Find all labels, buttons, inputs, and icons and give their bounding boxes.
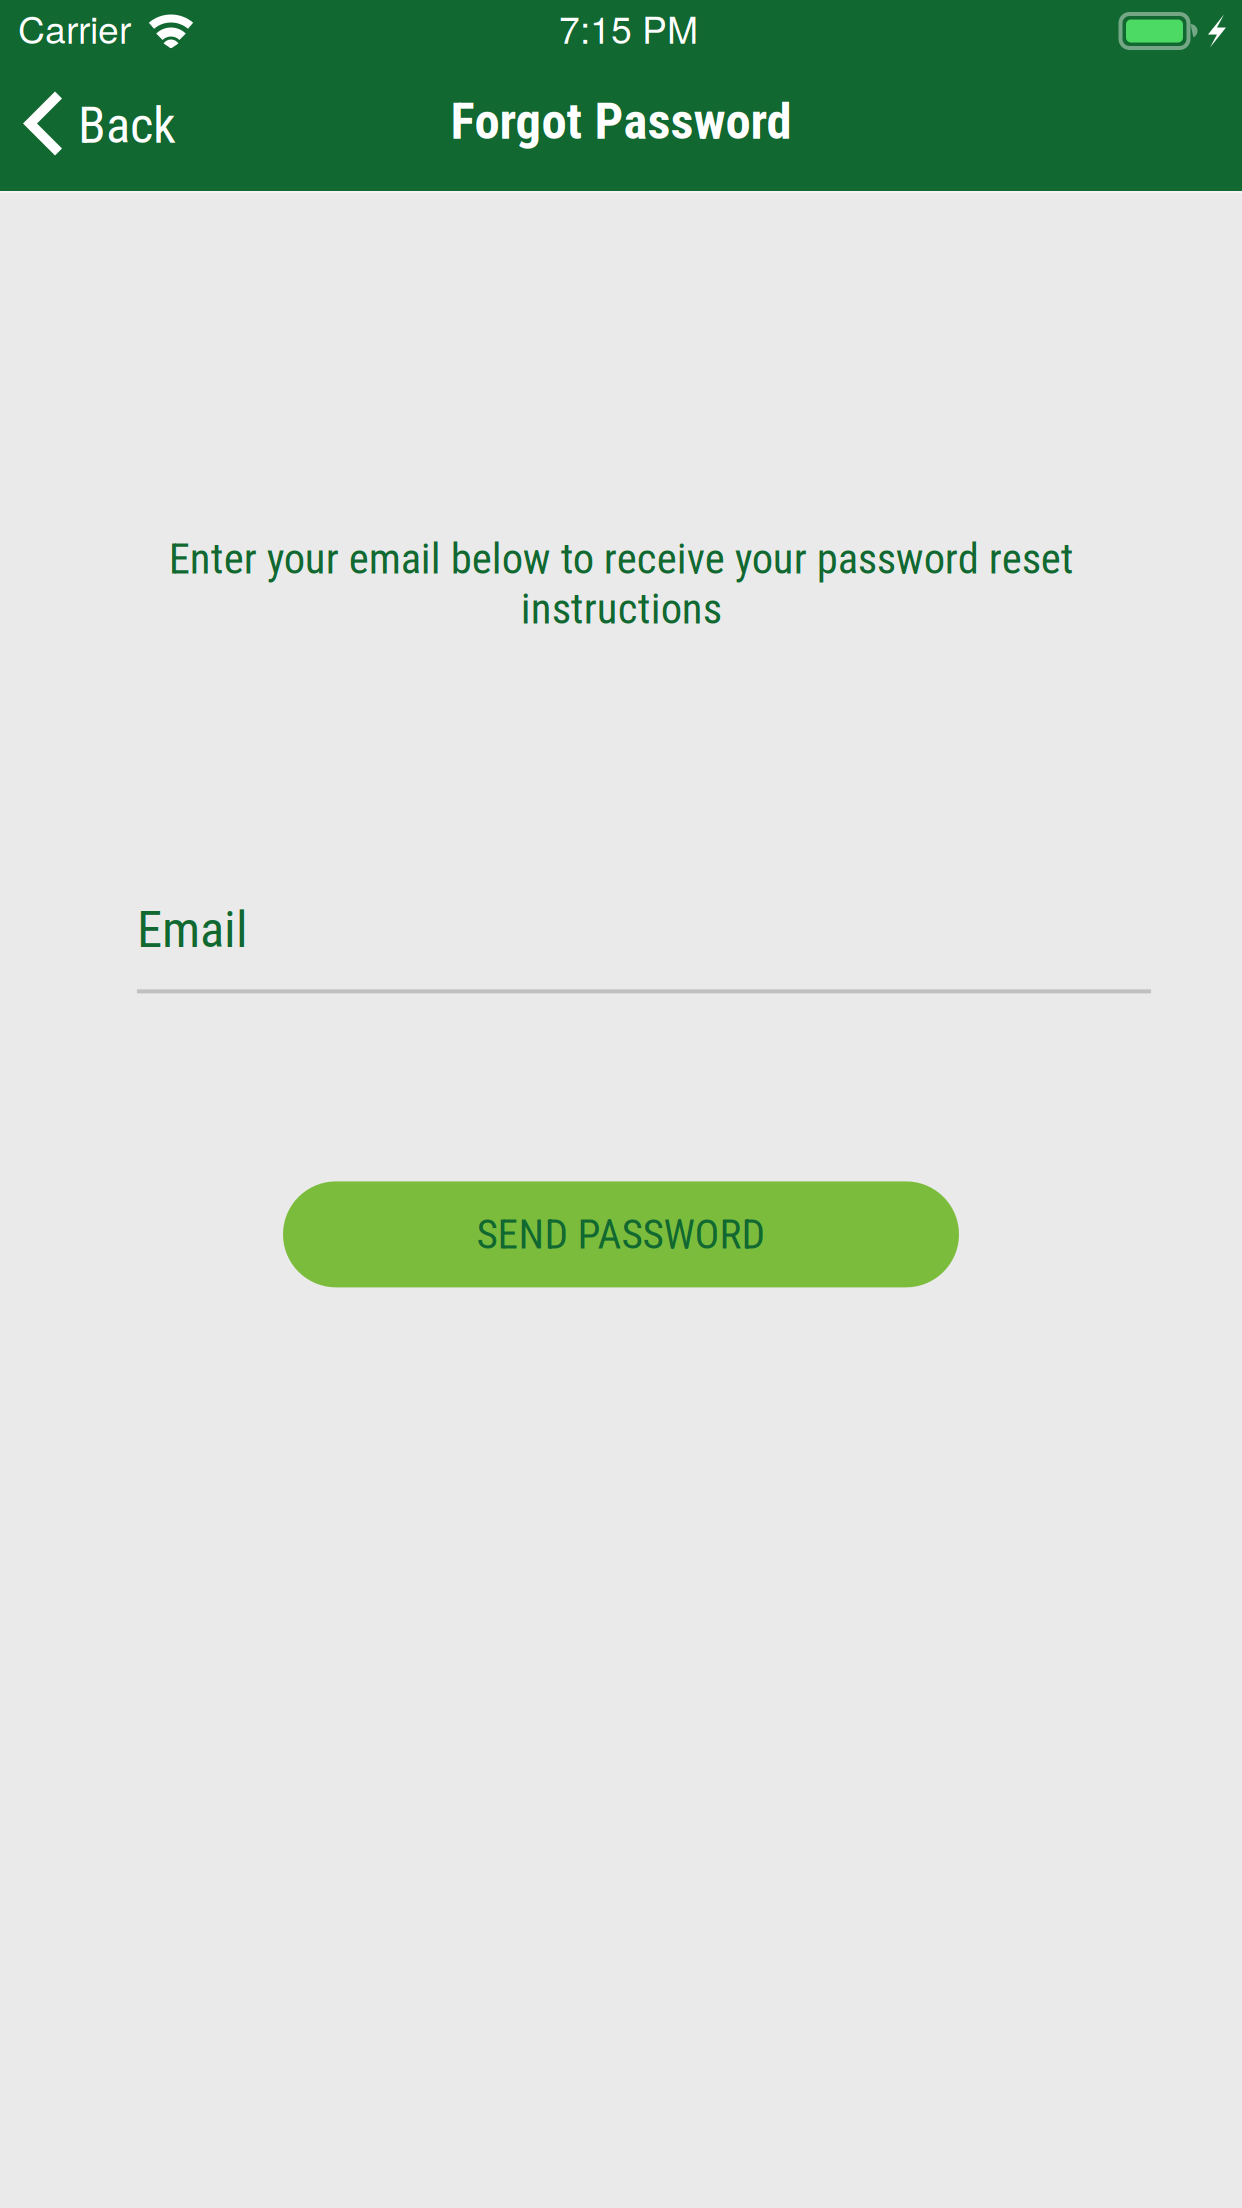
- staticText: Enter your email below to receive your p…: [168, 534, 1073, 634]
- button[interactable]: Back: [0, 70, 203, 180]
- staticText: Back: [78, 96, 176, 155]
- button[interactable]: Email: [137, 900, 1151, 993]
- staticText: Forgot Password: [450, 92, 791, 151]
- staticText: 7:15 PM: [559, 1, 698, 54]
- button[interactable]: SEND PASSWORD: [283, 1181, 959, 1287]
- staticText: Carrier: [18, 1, 131, 54]
- staticText: Email: [137, 900, 248, 959]
- staticText: SEND PASSWORD: [476, 1210, 765, 1259]
